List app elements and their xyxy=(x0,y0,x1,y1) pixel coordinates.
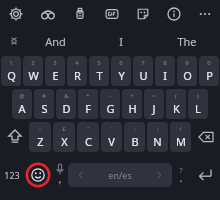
button[interactable]: Emoji xyxy=(24,157,52,193)
button[interactable]: - xyxy=(100,89,120,119)
staticText: " xyxy=(87,125,90,133)
staticText: # xyxy=(42,92,46,100)
button[interactable]: ' xyxy=(101,122,122,152)
staticText: = xyxy=(152,92,156,100)
staticText: en/es xyxy=(108,169,132,181)
button[interactable]: en/es xyxy=(68,163,172,187)
staticText: T xyxy=(96,68,103,83)
button[interactable]: Incognito xyxy=(32,0,64,27)
button[interactable]: ; xyxy=(147,122,168,152)
button[interactable]: * xyxy=(78,89,98,119)
button[interactable]: @ xyxy=(12,89,32,119)
button[interactable]: " xyxy=(77,122,99,152)
staticText: A xyxy=(18,101,26,116)
staticText: B xyxy=(131,134,139,149)
button[interactable]: 4 xyxy=(67,56,87,86)
staticText: 7 xyxy=(141,59,145,67)
staticText: Z xyxy=(37,134,44,149)
button[interactable]: + xyxy=(122,89,142,119)
button[interactable]: Settings xyxy=(0,0,32,27)
staticText: R xyxy=(74,68,81,83)
button[interactable]: 6 xyxy=(111,56,131,86)
button[interactable]: Clipboard xyxy=(64,0,96,27)
staticText: £ xyxy=(62,125,66,133)
button[interactable]: Shift xyxy=(0,122,29,152)
staticText: P xyxy=(206,68,213,83)
staticText: & xyxy=(64,92,69,100)
button[interactable]: 9 xyxy=(177,56,197,86)
staticText: The xyxy=(177,34,197,49)
button[interactable]: : xyxy=(124,122,145,152)
button[interactable]: And xyxy=(22,28,88,54)
button[interactable]: & xyxy=(56,89,76,119)
staticText: / xyxy=(179,125,182,133)
button[interactable]: 5 xyxy=(89,56,109,86)
staticText: E xyxy=(52,68,59,83)
button[interactable]: I xyxy=(88,28,154,54)
button[interactable]: Info xyxy=(158,0,189,27)
button[interactable]: / xyxy=(170,122,191,152)
staticText: K xyxy=(173,101,180,116)
staticText: ? xyxy=(179,166,183,176)
staticText: 3 xyxy=(53,59,57,67)
staticText: ( xyxy=(175,92,177,100)
button[interactable]: Voice input xyxy=(52,157,68,193)
staticText: 6 xyxy=(119,59,123,67)
staticText: G xyxy=(106,101,115,116)
button[interactable]: ~ xyxy=(29,122,51,152)
button[interactable]: ) xyxy=(188,89,208,119)
button[interactable]: # xyxy=(34,89,54,119)
button[interactable]: Backspace xyxy=(191,122,220,152)
staticText: W xyxy=(28,68,39,83)
button[interactable]: 123 xyxy=(0,157,24,193)
staticText: 2 xyxy=(31,59,35,67)
button[interactable]: 3 xyxy=(45,56,65,86)
button[interactable]: 1 xyxy=(1,56,21,86)
staticText: 0 xyxy=(207,59,211,67)
staticText: ) xyxy=(197,92,199,100)
staticText: Y xyxy=(118,68,125,83)
staticText: I xyxy=(163,68,167,83)
button[interactable]: Expand suggestions xyxy=(3,30,25,52)
button[interactable]: 8 xyxy=(155,56,175,86)
staticText: 8 xyxy=(163,59,167,67)
staticText: M xyxy=(176,134,186,149)
button[interactable]: £ xyxy=(53,122,75,152)
staticText: S xyxy=(41,101,48,116)
staticText: 1 xyxy=(9,59,13,67)
staticText: H xyxy=(128,101,137,116)
staticText: V xyxy=(108,134,115,149)
staticText: C xyxy=(85,134,92,149)
button[interactable]: = xyxy=(144,89,164,119)
staticText: ' xyxy=(111,125,113,133)
staticText: O xyxy=(183,68,192,83)
button[interactable]: The xyxy=(154,28,220,54)
button[interactable]: 2 xyxy=(23,56,43,86)
staticText: 9 xyxy=(185,59,189,67)
button[interactable]: ? xyxy=(172,157,190,193)
staticText: U xyxy=(139,68,148,83)
staticText: And xyxy=(45,34,66,49)
staticText: X xyxy=(61,134,68,149)
button[interactable]: 0 xyxy=(199,56,219,86)
staticText: J xyxy=(152,101,156,116)
staticText: 5 xyxy=(97,59,101,67)
button[interactable]: Stickers xyxy=(127,0,158,27)
button[interactable]: ( xyxy=(166,89,186,119)
button[interactable]: GIF xyxy=(96,0,127,27)
staticText: D xyxy=(62,101,71,116)
staticText: ; xyxy=(157,125,159,133)
staticText: L xyxy=(195,101,201,116)
staticText: 123 xyxy=(4,169,20,181)
staticText: - xyxy=(109,92,111,100)
staticText: Q xyxy=(7,68,16,83)
staticText: N xyxy=(153,134,162,149)
staticText: I xyxy=(119,34,123,49)
staticText: : xyxy=(134,125,136,133)
staticText: 4 xyxy=(75,59,79,67)
button[interactable]: More xyxy=(189,0,220,27)
button[interactable]: Enter xyxy=(190,157,220,193)
button[interactable]: 7 xyxy=(133,56,153,86)
staticText: F xyxy=(85,101,91,116)
staticText: @ xyxy=(19,92,25,100)
